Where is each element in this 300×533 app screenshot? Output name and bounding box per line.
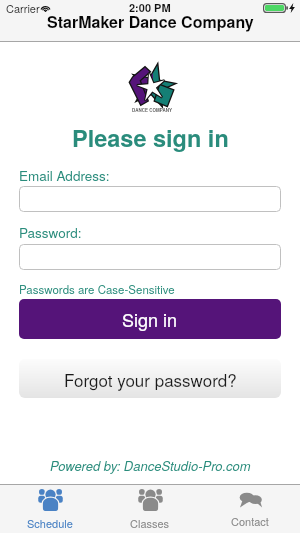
staticText: Schedule	[27, 515, 73, 531]
button[interactable]	[19, 244, 281, 270]
button[interactable]: Schedule	[0, 485, 100, 533]
staticText: Please sign in	[72, 121, 229, 155]
staticText: Sign in	[122, 306, 178, 332]
button[interactable]: Forgot your password?	[19, 359, 281, 398]
button[interactable]	[19, 186, 281, 212]
staticText: Classes	[130, 515, 170, 531]
staticText: Email Address:	[19, 166, 110, 185]
staticText: Forgot your password?	[64, 367, 237, 391]
button[interactable]: Classes	[100, 485, 200, 533]
staticText: Contact	[231, 513, 269, 529]
staticText: Passwords are Case-Sensitive	[19, 281, 175, 297]
staticText: Carrier	[6, 0, 40, 16]
staticText: 2:00 PM	[129, 0, 171, 16]
staticText: Password:	[19, 223, 82, 242]
button[interactable]: Contact	[200, 485, 300, 533]
staticText: StarMaker Dance Company	[47, 10, 254, 33]
staticText: Powered by: DanceStudio-Pro.com	[50, 456, 251, 474]
staticText: DANCE COMPANY	[132, 107, 172, 113]
button[interactable]: Sign in	[19, 299, 281, 339]
